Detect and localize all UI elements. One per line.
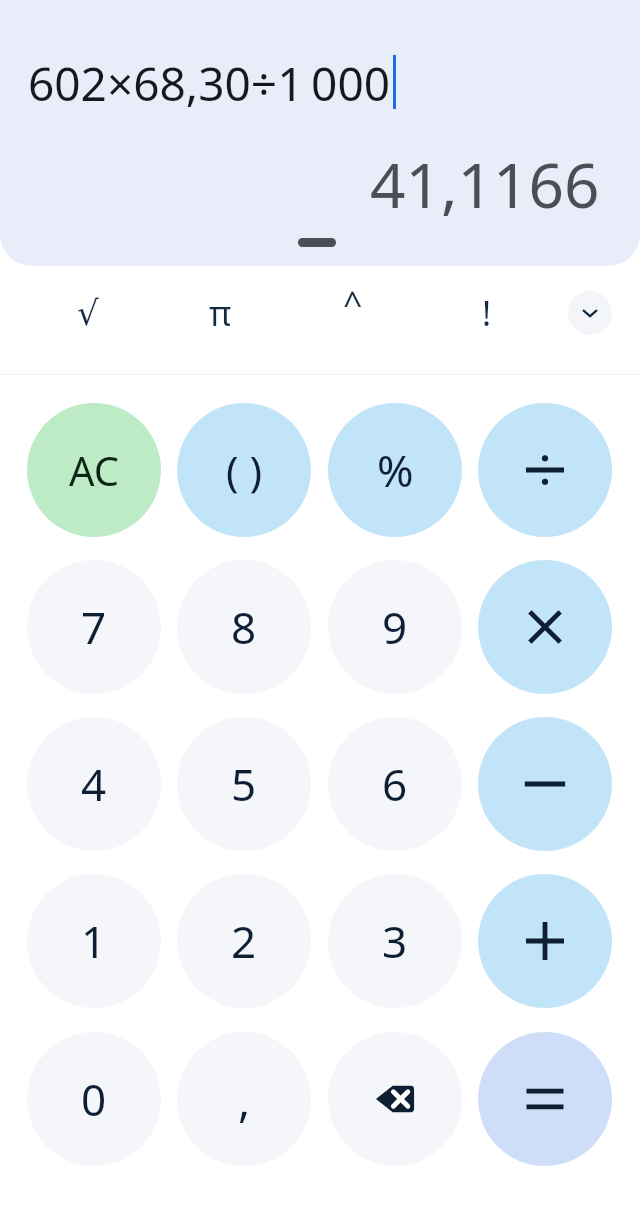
button[interactable]: Subtract [478,717,612,851]
button[interactable]: Multiply [478,560,612,694]
button[interactable]: 1 [27,874,161,1008]
staticText: 6 [382,754,408,814]
button[interactable]: More functions [568,291,612,335]
staticText: 7 [81,597,107,657]
button[interactable]: , [177,1032,311,1166]
staticText: 41,1166 [370,142,600,226]
button[interactable]: 602×68,30÷1 000 [0,0,640,266]
staticText: √ [77,293,99,333]
button[interactable]: Add [478,874,612,1008]
staticText: , [238,1068,251,1131]
button[interactable]: Backspace [328,1032,462,1166]
button[interactable]: 8 [177,560,311,694]
button[interactable]: 5 [177,717,311,851]
button[interactable]: 7 [27,560,161,694]
staticText: 4 [81,754,107,814]
staticText: 5 [231,754,257,814]
button[interactable]: % [328,403,462,537]
staticText: π [209,290,232,336]
staticText: 3 [382,911,408,971]
staticText: AC [69,443,120,497]
button[interactable]: 0 [27,1032,161,1166]
staticText: ( ) [226,442,263,499]
button[interactable]: 3 [328,874,462,1008]
staticText: 2 [231,911,257,971]
button[interactable]: 4 [27,717,161,851]
button[interactable]: Factorial [443,278,531,348]
button[interactable]: Pi [176,278,264,348]
button[interactable]: Equals [478,1032,612,1166]
staticText: % [377,440,414,500]
staticText: 1 [81,911,107,971]
button[interactable]: ( ) [177,403,311,537]
staticText: ^ [343,280,363,326]
button[interactable]: Power [309,278,397,348]
staticText: 602×68,30÷1 000 [28,52,391,115]
button[interactable]: 6 [328,717,462,851]
staticText: ! [482,290,492,336]
button[interactable]: Divide [478,403,612,537]
button[interactable]: 2 [177,874,311,1008]
button[interactable]: 9 [328,560,462,694]
button[interactable]: Square root [44,278,132,348]
staticText: 0 [81,1069,107,1129]
staticText: 9 [382,597,408,657]
button[interactable]: AC [27,403,161,537]
staticText: 8 [231,597,257,657]
